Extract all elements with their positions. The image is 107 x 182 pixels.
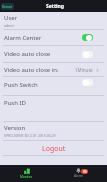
staticText: Video auto close in: [4, 66, 59, 74]
staticText: Monitor [20, 175, 33, 179]
staticText: Setting [46, 3, 64, 10]
staticText: User [4, 14, 18, 22]
staticText: 99 [83, 170, 87, 174]
button[interactable]: Video auto close in: [0, 63, 107, 77]
other: Monitor [24, 168, 30, 174]
staticText: Alarm [74, 174, 83, 178]
staticText: Logout [42, 144, 66, 154]
button[interactable]: Push ID [0, 96, 107, 122]
button[interactable]: Alarm Center [0, 30, 107, 46]
button[interactable]: Alarm [52, 165, 104, 175]
staticText: SPRO-NDVR SD 2.01 2016.06.29 [4, 133, 56, 138]
button[interactable]: Return [1, 3, 14, 10]
staticText: 1Minute [75, 67, 93, 73]
button[interactable]: User [0, 12, 107, 30]
button[interactable]: Video auto close [0, 46, 107, 63]
staticText: admin [4, 23, 15, 28]
button[interactable]: Version [0, 122, 107, 141]
button[interactable]: Push Switch [0, 77, 107, 96]
staticText: Push ID [4, 99, 26, 107]
button[interactable]: Enabled [82, 34, 93, 41]
staticText: Return [2, 5, 13, 9]
staticText: Push Switch [4, 81, 38, 89]
button[interactable]: Disabled [82, 51, 93, 58]
button[interactable]: Monitor [0, 165, 52, 176]
button[interactable]: Logout [0, 141, 107, 156]
other: Alarm [76, 168, 81, 173]
button[interactable]: Disabled [82, 79, 93, 86]
staticText: Video auto close [4, 50, 51, 58]
staticText: Version [4, 124, 26, 132]
staticText: Alarm Center [4, 34, 42, 42]
